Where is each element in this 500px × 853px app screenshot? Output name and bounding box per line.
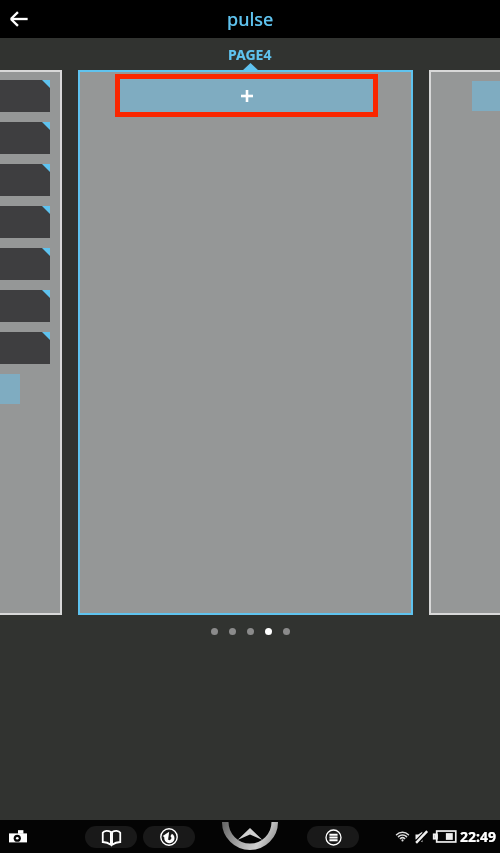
button[interactable]: Widget card [0,80,50,112]
staticText: pulse [227,7,274,32]
button[interactable]: Camera [3,822,33,852]
button[interactable]: Go to page 2 [229,628,236,635]
button[interactable]: Home [218,820,282,853]
button[interactable]: Add item [120,79,373,112]
button[interactable]: Widget card [0,122,50,154]
button[interactable]: Widget card [0,332,50,364]
button[interactable]: Back [1,1,37,37]
button[interactable]: PAGE4 [228,45,272,64]
button[interactable]: Go to page 3 [247,628,254,635]
button[interactable]: Widget card [0,248,50,280]
button[interactable]: Bookmarks [85,826,137,848]
button[interactable]: Widget card [0,290,50,322]
button[interactable]: Widget card [0,206,50,238]
button[interactable]: Widget card [0,164,50,196]
button[interactable]: Back [143,826,195,848]
staticText: 22:49 [460,827,496,846]
button[interactable]: Menu [307,826,359,848]
button[interactable]: Go to page 1 [211,628,218,635]
button[interactable]: Go to page 4 [265,628,272,635]
button[interactable]: Go to page 5 [283,628,290,635]
